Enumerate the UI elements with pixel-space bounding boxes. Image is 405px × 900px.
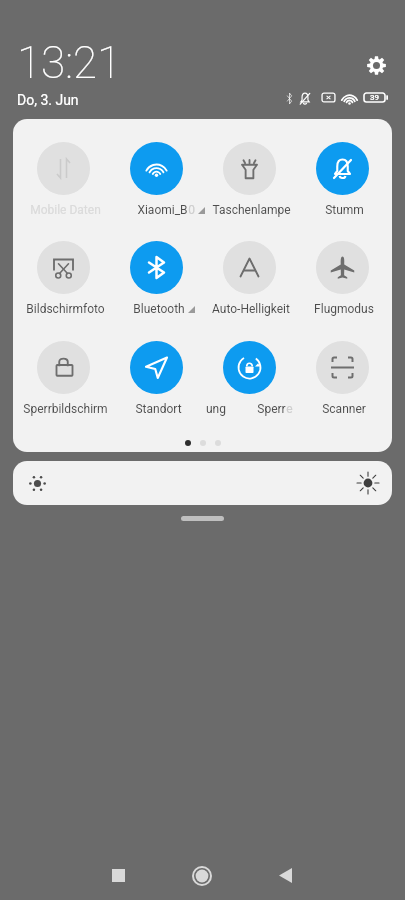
button[interactable]: Auto-Helligkeit bbox=[203, 241, 295, 316]
button[interactable]: Bluetooth bbox=[110, 241, 202, 316]
staticText: 0 bbox=[188, 203, 195, 217]
staticText: Stumm bbox=[325, 203, 364, 217]
staticText: 13:21 bbox=[17, 37, 122, 89]
button[interactable]: Flugmodus bbox=[296, 241, 388, 316]
button[interactable]: Xiaomi_B bbox=[110, 142, 202, 217]
staticText: e bbox=[286, 402, 293, 416]
button[interactable]: Stumm bbox=[296, 142, 388, 217]
button[interactable]: Settings bbox=[367, 56, 386, 75]
button[interactable]: Home bbox=[181, 855, 222, 896]
button[interactable]: Mobile Daten bbox=[17, 142, 109, 217]
staticText: Sperr bbox=[257, 402, 286, 416]
staticText: Flugmodus bbox=[314, 302, 374, 316]
staticText: Sperrbildschirm bbox=[23, 402, 108, 416]
button[interactable]: Brightness slider bbox=[13, 461, 392, 505]
staticText: Mobile Daten bbox=[30, 203, 101, 217]
staticText: Xiaomi_B bbox=[137, 203, 188, 217]
button[interactable]: Back bbox=[265, 855, 306, 896]
staticText: Taschenlampe bbox=[212, 203, 291, 217]
button[interactable]: Bildschirmfoto bbox=[17, 241, 109, 316]
staticText: 39 bbox=[370, 93, 380, 102]
staticText: ung bbox=[206, 402, 226, 416]
button[interactable]: Standort bbox=[110, 341, 202, 416]
staticText: Do, 3. Jun bbox=[17, 92, 79, 108]
staticText: Auto-Helligkeit bbox=[212, 302, 290, 316]
button[interactable]: Sperrbildschirm bbox=[17, 341, 109, 416]
button[interactable]: Sperr bbox=[203, 341, 295, 416]
staticText: Standort bbox=[135, 402, 182, 416]
staticText: Bluetooth bbox=[133, 302, 185, 316]
button[interactable]: Recents bbox=[98, 855, 139, 896]
staticText: Scanner bbox=[322, 402, 366, 416]
button[interactable]: Taschenlampe bbox=[203, 142, 295, 217]
button[interactable]: Scanner bbox=[296, 341, 388, 416]
staticText: Bildschirmfoto bbox=[26, 302, 105, 316]
